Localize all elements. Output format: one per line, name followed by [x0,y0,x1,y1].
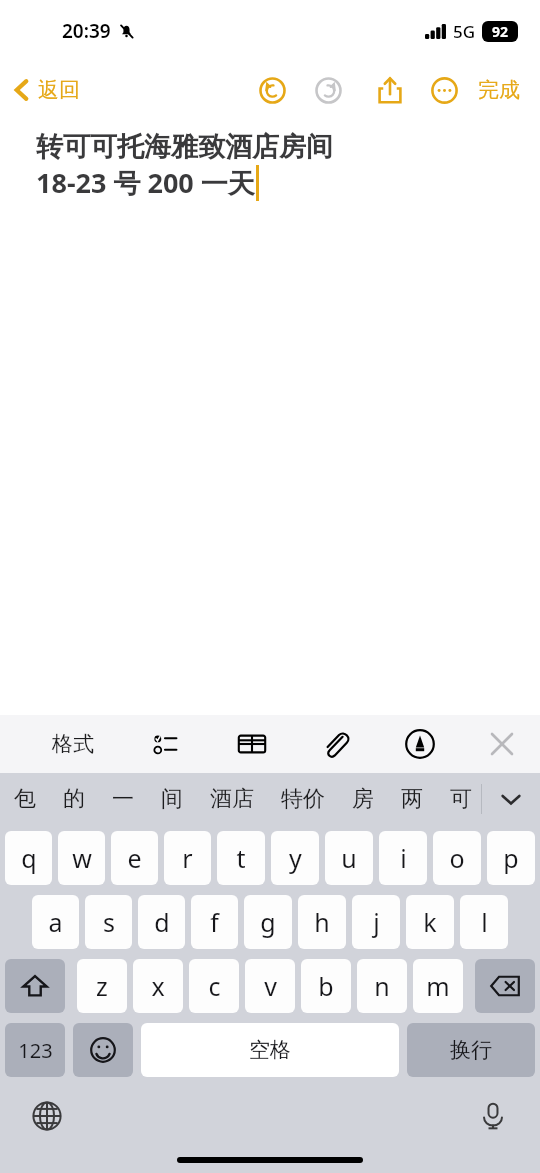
staticText: 一 [112,785,134,813]
staticText: h [314,905,330,939]
button[interactable]: 格式 [44,723,102,765]
staticText: 5G [453,20,476,43]
staticText: 20:39 [62,18,111,44]
button[interactable]: Undo [250,68,294,112]
staticText: l [481,905,488,939]
button[interactable]: s [85,895,132,949]
button[interactable]: u [325,831,373,885]
button[interactable]: g [244,895,292,949]
button[interactable]: d [138,895,185,949]
button[interactable]: Dictation [470,1093,516,1139]
staticText: p [503,841,519,875]
button[interactable]: Checklist [146,722,190,766]
button[interactable]: Attach file [314,722,358,766]
button[interactable]: Expand candidates [482,773,540,825]
button[interactable]: w [58,831,105,885]
staticText: u [341,841,357,875]
button[interactable]: Share [368,68,412,112]
staticText: 18-23 号 200 一天 [36,164,255,201]
button[interactable]: n [357,959,407,1013]
staticText: z [96,969,108,1003]
button[interactable]: t [217,831,265,885]
button[interactable]: 完成 [474,69,524,111]
staticText: 空格 [249,1037,291,1063]
staticText: a [48,905,63,939]
staticText: w [72,841,92,875]
staticText: 间 [161,785,183,813]
button[interactable]: 房 [346,777,380,821]
staticText: x [151,969,165,1003]
button[interactable]: Markup [398,722,442,766]
staticText: b [318,969,334,1003]
button[interactable]: 特价 [275,777,331,821]
staticText: c [208,969,221,1003]
button[interactable]: f [191,895,238,949]
staticText: e [127,841,142,875]
button[interactable]: 123 [5,1023,65,1077]
staticText: 格式 [52,731,94,757]
staticText: i [400,841,407,875]
button[interactable]: More options [422,68,466,112]
button[interactable]: 两 [395,777,429,821]
staticText: 返回 [38,77,80,103]
button[interactable]: e [111,831,158,885]
staticText: r [182,841,193,875]
staticText: o [449,841,465,875]
button[interactable]: c [189,959,239,1013]
staticText: j [373,905,380,939]
button[interactable]: 空格 [141,1023,399,1077]
button[interactable]: 包 [8,777,42,821]
button[interactable]: k [406,895,454,949]
button[interactable]: j [352,895,400,949]
staticText: 酒店 [210,785,254,813]
staticText: d [154,905,170,939]
staticText: k [423,905,437,939]
staticText: t [236,841,246,875]
button[interactable]: Backspace [475,959,535,1013]
button[interactable]: v [245,959,295,1013]
button[interactable]: r [164,831,211,885]
staticText: 完成 [478,77,520,103]
staticText: 换行 [450,1037,492,1063]
button[interactable]: Redo [306,68,350,112]
staticText: f [210,905,219,939]
button[interactable]: 换行 [407,1023,535,1077]
button[interactable]: l [460,895,508,949]
button[interactable]: x [133,959,183,1013]
button[interactable]: 的 [57,777,91,821]
button[interactable]: z [77,959,127,1013]
button[interactable]: i [379,831,427,885]
button[interactable]: Table [230,722,274,766]
staticText: m [426,969,450,1003]
button[interactable]: Switch keyboard [24,1093,70,1139]
staticText: n [374,969,390,1003]
staticText: g [260,905,276,939]
button[interactable]: 间 [155,777,189,821]
staticText: v [264,969,277,1003]
staticText: 房 [352,785,374,813]
button[interactable]: 酒店 [204,777,260,821]
button[interactable]: 一 [106,777,140,821]
staticText: 特价 [281,785,325,813]
staticText: q [21,841,37,875]
button[interactable]: 可 [444,777,478,821]
staticText: 的 [63,785,85,813]
staticText: y [289,841,302,875]
staticText: 包 [14,785,36,813]
button[interactable]: Close keyboard [478,720,526,768]
staticText: s [103,905,115,939]
button[interactable]: a [32,895,79,949]
button[interactable]: h [298,895,346,949]
staticText: 两 [401,785,423,813]
button[interactable]: m [413,959,463,1013]
staticText: 可 [450,785,472,813]
staticText: 92 [492,22,509,41]
button[interactable]: b [301,959,351,1013]
button[interactable]: y [271,831,319,885]
button[interactable]: 返回 [0,71,90,109]
button[interactable]: Shift [5,959,65,1013]
button[interactable]: Emoji [73,1023,133,1077]
button[interactable]: q [5,831,52,885]
button[interactable]: p [487,831,535,885]
button[interactable]: o [433,831,481,885]
